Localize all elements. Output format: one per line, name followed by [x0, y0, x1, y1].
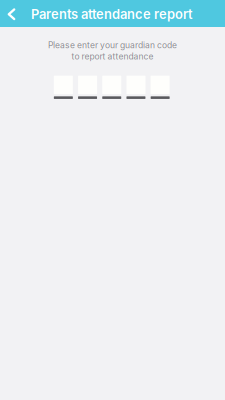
button[interactable]: Guardian code digit 4: [126, 76, 145, 99]
button[interactable]: Guardian code digit 2: [78, 76, 97, 99]
button[interactable]: Guardian code digit 3: [102, 76, 121, 99]
staticText: Parents attendance report: [31, 6, 193, 22]
button[interactable]: Guardian code digit 1: [54, 76, 73, 99]
staticText: to report attendance: [71, 51, 153, 62]
button[interactable]: Back: [0, 0, 31, 27]
staticText: Please enter your guardian code: [48, 40, 177, 50]
button[interactable]: Guardian code digit 5: [151, 76, 170, 99]
